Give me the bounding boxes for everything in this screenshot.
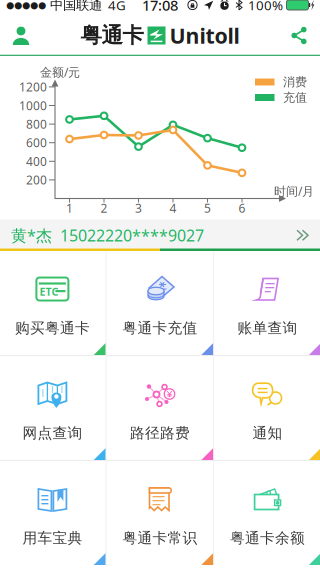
staticText: 粤通卡常识	[122, 529, 197, 547]
staticText: 粤通卡	[80, 22, 143, 49]
staticText: 4	[169, 200, 176, 216]
staticText: 3	[135, 200, 142, 216]
button[interactable]: 黄*杰	[0, 219, 320, 251]
staticText: 600	[26, 135, 47, 151]
staticText: 用车宝典	[22, 529, 82, 547]
staticText: 1000	[19, 97, 47, 113]
staticText: 账单查询	[238, 319, 298, 337]
button[interactable]: ETC	[0, 251, 106, 355]
button[interactable]: Account	[0, 17, 42, 53]
staticText: 6	[238, 200, 245, 216]
staticText: Unitoll	[169, 21, 239, 50]
staticText: ETC	[39, 284, 58, 299]
staticText: 时间/月	[274, 183, 314, 199]
staticText: 路径路费	[130, 424, 190, 442]
staticText: 5	[204, 200, 211, 216]
button[interactable]: 路径路费	[107, 356, 213, 460]
button[interactable]: 网点查询	[0, 356, 106, 460]
staticText: 黄*杰	[11, 225, 52, 246]
staticText: 消费	[283, 75, 307, 89]
staticText: 通知	[253, 424, 283, 442]
staticText: 800	[26, 116, 47, 132]
button[interactable]: 粤通卡余额	[214, 461, 320, 565]
button[interactable]: 通知	[214, 356, 320, 460]
staticText: 中国联通	[46, 0, 102, 13]
staticText: 15022220****9027	[52, 225, 204, 246]
staticText: 17:08	[142, 0, 178, 15]
button[interactable]: Share	[278, 17, 320, 53]
staticText: 200	[26, 172, 47, 188]
staticText: 1200	[19, 79, 47, 95]
staticText: 4G	[102, 0, 126, 14]
staticText: ●●●●●	[6, 0, 46, 10]
staticText: 购买粤通卡	[15, 319, 90, 337]
staticText: 粤通卡充值	[122, 319, 197, 337]
button[interactable]: 账单查询	[214, 251, 320, 355]
button[interactable]: 粤通卡常识	[107, 461, 213, 565]
staticText: 100%	[248, 0, 283, 14]
staticText: 网点查询	[22, 424, 82, 442]
staticText: 粤通卡余额	[230, 529, 305, 547]
staticText: 金额/元	[40, 64, 80, 80]
staticText: 1	[66, 200, 73, 216]
staticText: 2	[100, 200, 107, 216]
button[interactable]: 粤通卡充值	[107, 251, 213, 355]
staticText: 400	[26, 153, 47, 169]
staticText: 充值	[283, 90, 307, 105]
button[interactable]: 用车宝典	[0, 461, 106, 565]
